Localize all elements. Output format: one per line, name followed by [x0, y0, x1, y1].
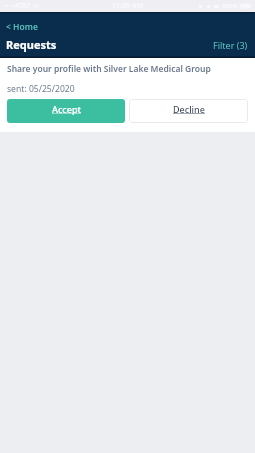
- staticText: < Home: [6, 21, 38, 33]
- staticText: 11:00 AM: [112, 1, 143, 11]
- staticText: Filter (3): [213, 39, 248, 51]
- button[interactable]: Filter (3): [206, 36, 255, 54]
- staticText: AT&T: [15, 1, 31, 10]
- staticText: sent: 05/25/2020: [7, 83, 75, 95]
- staticText: Share your profile with Silver Lake Medi…: [7, 63, 211, 75]
- staticText: Accept: [52, 103, 81, 115]
- button[interactable]: Accept: [7, 99, 125, 123]
- staticText: 100%: [222, 2, 238, 10]
- staticText: Decline: [173, 103, 205, 115]
- button[interactable]: Decline: [129, 99, 248, 123]
- staticText: Requests: [6, 37, 57, 52]
- button[interactable]: < Home: [0, 21, 46, 33]
